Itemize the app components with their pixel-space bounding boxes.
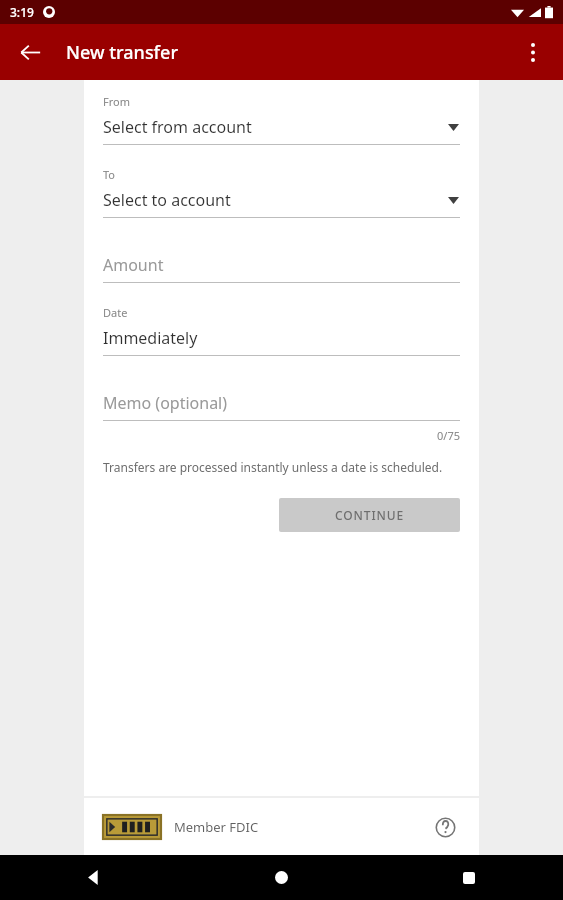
- staticText: Select from account: [103, 116, 252, 138]
- button[interactable]: To: [103, 167, 460, 218]
- button[interactable]: Help: [430, 812, 460, 842]
- button[interactable]: CONTINUE: [279, 498, 460, 532]
- button[interactable]: Home: [187, 855, 375, 900]
- staticText: Transfers are processed instantly unless…: [103, 459, 443, 475]
- staticText: CONTINUE: [335, 507, 405, 523]
- staticText: Amount: [103, 254, 164, 276]
- button[interactable]: More options: [509, 28, 557, 76]
- staticText: New transfer: [66, 40, 178, 65]
- staticText: Date: [103, 305, 128, 320]
- button[interactable]: Back: [10, 32, 50, 72]
- button[interactable]: From: [103, 94, 460, 145]
- staticText: Select to account: [103, 189, 231, 211]
- button[interactable]: Memo (optional): [103, 392, 460, 421]
- button[interactable]: Recent apps: [375, 855, 563, 900]
- staticText: 0/75: [103, 428, 460, 443]
- staticText: Member FDIC: [174, 818, 259, 836]
- staticText: From: [103, 94, 130, 109]
- staticText: 3:19: [10, 4, 34, 20]
- button[interactable]: Date: [103, 305, 460, 356]
- staticText: To: [103, 167, 116, 182]
- staticText: Memo (optional): [103, 392, 228, 414]
- button[interactable]: Amount: [103, 254, 460, 283]
- staticText: Immediately: [103, 327, 198, 349]
- button[interactable]: Back: [0, 855, 187, 900]
